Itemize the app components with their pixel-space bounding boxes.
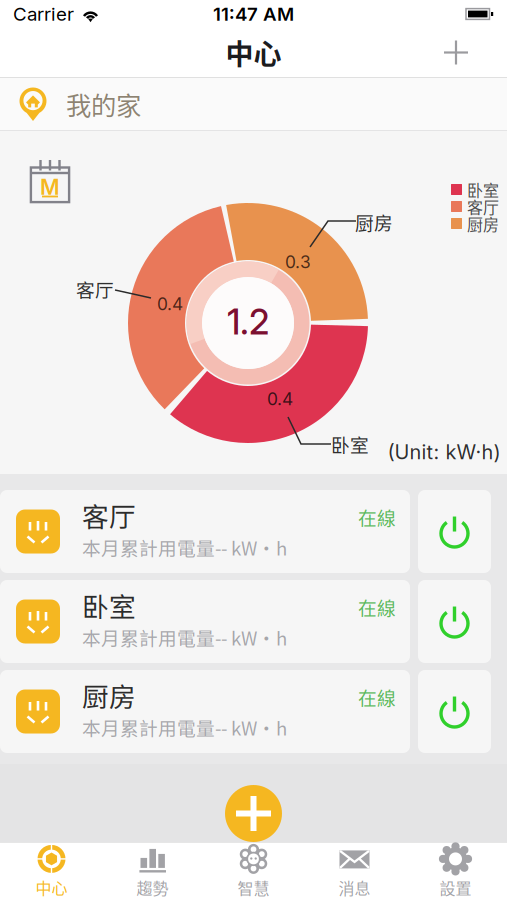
staticText: 卧室 [331,430,369,457]
staticText: 客厅 [82,496,136,534]
staticText: 本月累計用電量-- kW·h [82,714,287,741]
staticText: 智慧 [237,876,269,899]
staticText: 卧室 [82,586,136,624]
button[interactable]: 客厅 [0,490,410,573]
staticText: M [40,174,60,200]
staticText: Carrier [13,3,74,25]
staticText: 中心 [35,876,67,899]
staticText: 客厅 [467,195,499,218]
button[interactable]: Add device [225,785,282,842]
staticText: 消息 [338,876,370,899]
button[interactable]: 設置 [405,843,506,900]
button[interactable]: 我的家 [0,78,507,130]
button[interactable]: Toggle power for 卧室 [418,580,491,663]
staticText: 0.4 [267,388,293,409]
staticText: 客厅 [76,275,114,302]
button[interactable]: 消息 [304,843,405,900]
staticText: 本月累計用電量-- kW·h [82,624,287,651]
staticText: 11:47 AM [213,3,294,25]
button[interactable]: Add [431,27,481,77]
staticText: 在線 [358,683,396,710]
staticText: 設置 [439,876,471,899]
staticText: 卧室 [467,178,499,201]
staticText: 0.4 [157,293,183,314]
staticText: (Unit: kW·h) [387,440,500,464]
staticText: 0.3 [285,251,311,272]
staticText: 厨房 [467,212,499,235]
button[interactable]: 趨勢 [102,843,203,900]
staticText: 厨房 [355,208,393,235]
button[interactable]: 中心 [1,843,102,900]
button[interactable]: Toggle power for 厨房 [418,670,491,753]
staticText: 我的家 [66,86,141,122]
button[interactable]: 厨房 [0,670,410,753]
button[interactable]: 卧室 [0,580,410,663]
staticText: 在線 [358,593,396,620]
staticText: 中心 [225,32,281,73]
button[interactable]: 智慧 [203,843,304,900]
staticText: 厨房 [82,676,136,714]
button[interactable]: Toggle power for 客厅 [418,490,491,573]
staticText: 在線 [358,503,396,530]
staticText: 本月累計用電量-- kW·h [82,534,287,561]
staticText: 趨勢 [136,876,168,899]
staticText: 1.2 [227,301,269,343]
